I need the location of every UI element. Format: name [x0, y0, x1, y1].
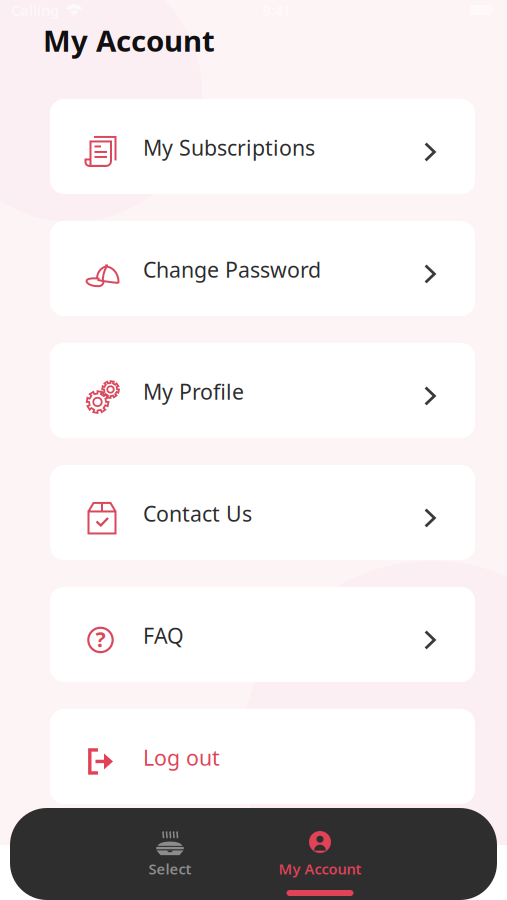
button[interactable]: My Profile — [50, 343, 475, 438]
staticText: FAQ — [143, 621, 184, 650]
staticText: My Subscriptions — [143, 133, 315, 162]
staticText: Change Password — [143, 255, 321, 284]
staticText: ? — [95, 625, 105, 653]
button[interactable]: Select — [95, 808, 245, 900]
staticText: My Account — [43, 21, 215, 60]
staticText: Log out — [143, 743, 220, 772]
staticText: My Account — [278, 859, 361, 878]
button[interactable]: Change Password — [50, 221, 475, 316]
staticText: Select — [148, 859, 191, 878]
button[interactable]: My Subscriptions — [50, 99, 475, 194]
staticText: Contact Us — [143, 499, 252, 528]
staticText: My Profile — [143, 377, 244, 406]
button[interactable]: Contact Us — [50, 465, 475, 560]
button[interactable]: ? — [50, 587, 475, 682]
button[interactable]: My Account — [245, 808, 395, 900]
staticText: Calling — [11, 0, 59, 20]
button[interactable]: Log out — [50, 709, 475, 804]
